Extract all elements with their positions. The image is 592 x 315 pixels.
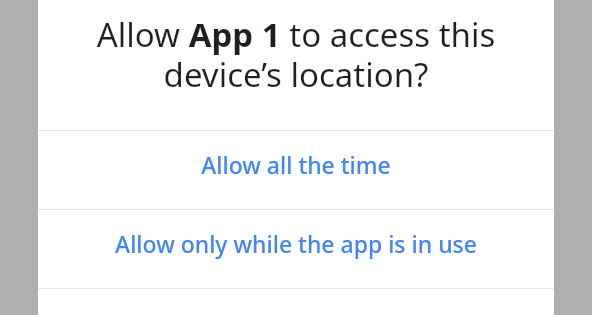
button[interactable]: Allow all the time — [38, 131, 554, 209]
staticText: Allow App 1 to access this device’s loca… — [72, 12, 520, 96]
staticText: Allow only while the app is in use — [62, 228, 530, 259]
button[interactable]: Allow only while the app is in use — [38, 210, 554, 288]
staticText: Allow all the time — [62, 149, 530, 180]
